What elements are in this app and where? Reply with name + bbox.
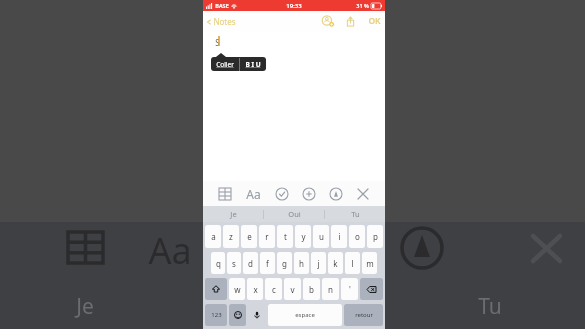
button[interactable]: p — [367, 225, 383, 248]
staticText: v — [290, 284, 295, 295]
button[interactable]: j — [311, 252, 326, 274]
button[interactable]: g — [277, 252, 292, 274]
staticText: r — [265, 231, 269, 242]
button[interactable]: Oui — [264, 206, 324, 222]
button[interactable]: Shift — [205, 278, 227, 300]
button[interactable]: espace — [268, 304, 342, 326]
staticText: 31 % — [356, 2, 369, 9]
staticText: y — [301, 231, 306, 242]
button[interactable]: Backspace — [360, 278, 383, 300]
staticText: Aa — [246, 186, 261, 202]
staticText: b — [309, 284, 314, 295]
staticText: B I U — [245, 60, 261, 69]
button[interactable]: Share — [344, 15, 357, 28]
button[interactable]: 123 — [205, 304, 227, 326]
staticText: i — [338, 231, 341, 242]
button[interactable]: s — [227, 252, 241, 274]
button[interactable]: l — [345, 252, 360, 274]
staticText: c — [272, 284, 276, 295]
staticText: Je — [230, 209, 237, 219]
staticText: Coller — [216, 60, 234, 69]
button[interactable]: t — [277, 225, 293, 248]
button[interactable]: Checklist — [274, 186, 290, 202]
button[interactable]: Close keyboard — [355, 186, 371, 202]
staticText: Oui — [288, 209, 301, 219]
staticText: 19:33 — [286, 2, 302, 10]
staticText: BASE — [215, 2, 229, 9]
button[interactable]: q — [211, 252, 225, 274]
button[interactable]: Add person — [321, 14, 335, 28]
staticText: m — [366, 258, 374, 269]
button[interactable]: m — [362, 252, 377, 274]
staticText: t — [284, 231, 287, 242]
staticText: p — [373, 231, 378, 242]
staticText: g — [282, 258, 287, 269]
button[interactable]: z — [223, 225, 239, 248]
staticText: espace — [295, 311, 315, 319]
button[interactable]: Notes — [206, 16, 236, 27]
staticText: e — [247, 231, 252, 242]
button[interactable]: h — [294, 252, 309, 274]
button[interactable]: w — [229, 278, 245, 300]
button[interactable]: Tu — [325, 206, 385, 222]
button[interactable]: b — [303, 278, 320, 300]
staticText: Tu — [351, 209, 360, 219]
staticText: q — [216, 258, 221, 269]
button[interactable]: c — [265, 278, 282, 300]
staticText: w — [234, 284, 241, 295]
button[interactable]: Emoji — [229, 304, 246, 326]
staticText: o — [355, 231, 360, 242]
button[interactable]: u — [313, 225, 329, 248]
button[interactable]: y — [295, 225, 311, 248]
button[interactable]: Table — [217, 186, 233, 202]
staticText: a — [211, 231, 216, 242]
button[interactable]: o — [349, 225, 365, 248]
button[interactable]: a — [205, 225, 221, 248]
staticText: l — [351, 258, 354, 269]
staticText: Tu — [478, 292, 502, 321]
button[interactable]: k — [328, 252, 343, 274]
staticText: h — [299, 258, 304, 269]
staticText: Je — [76, 292, 94, 321]
button[interactable]: n — [322, 278, 339, 300]
button[interactable]: ' — [341, 278, 358, 300]
staticText: retour — [355, 311, 373, 319]
staticText: j — [317, 258, 320, 269]
button[interactable]: Je — [203, 206, 263, 222]
staticText: OK — [368, 15, 381, 27]
button[interactable]: Dictate — [248, 304, 266, 326]
staticText: f — [266, 258, 269, 269]
staticText: S — [215, 37, 220, 48]
staticText: u — [319, 231, 324, 242]
button[interactable]: OK — [368, 15, 381, 27]
button[interactable]: Coller — [211, 57, 239, 71]
button[interactable]: v — [284, 278, 301, 300]
staticText: ' — [349, 284, 351, 295]
button[interactable]: i — [331, 225, 347, 248]
button[interactable]: x — [247, 278, 263, 300]
staticText: z — [229, 231, 233, 242]
staticText: Notes — [213, 16, 236, 27]
staticText: 123 — [211, 311, 222, 319]
button[interactable]: Add attachment — [301, 186, 317, 202]
staticText: n — [328, 284, 333, 295]
staticText: s — [232, 258, 236, 269]
button[interactable]: B I U — [240, 57, 266, 71]
button[interactable]: e — [241, 225, 257, 248]
button[interactable]: Markup — [328, 186, 344, 202]
button[interactable]: retour — [344, 304, 383, 326]
button[interactable]: r — [259, 225, 275, 248]
staticText: k — [333, 258, 338, 269]
button[interactable]: f — [260, 252, 275, 274]
button[interactable]: d — [243, 252, 258, 274]
staticText: x — [253, 284, 258, 295]
staticText: Aa — [148, 226, 192, 275]
button[interactable]: Aa — [244, 184, 263, 204]
staticText: d — [248, 258, 253, 269]
